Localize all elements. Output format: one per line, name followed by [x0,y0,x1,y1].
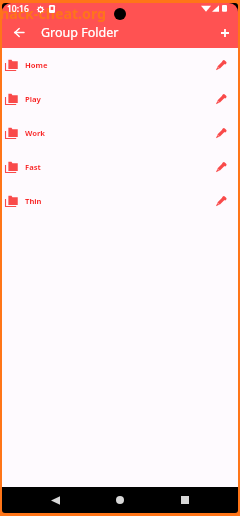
staticText: Fast [25,162,41,172]
button[interactable]: Home [107,487,133,513]
button[interactable]: Edit Work [208,121,232,145]
button[interactable]: Back [2,18,35,47]
staticText: Home [25,60,48,70]
button[interactable]: Edit Fast [208,155,232,179]
button[interactable]: Home [2,48,238,82]
button[interactable]: Recents [172,487,198,513]
button[interactable]: Edit Play [208,87,232,111]
staticText: 10:16 [7,3,29,15]
button[interactable]: Play [2,82,238,116]
staticText: hack-cheat.org [2,4,107,23]
button[interactable]: Edit Home [208,53,232,77]
button[interactable]: Thin [2,184,238,218]
staticText: Group Folder [41,24,119,41]
button[interactable]: Edit Thin [208,189,232,213]
button[interactable]: Work [2,116,238,150]
staticText: Play [25,94,41,104]
button[interactable]: Back [42,487,68,513]
button[interactable]: Fast [2,150,238,184]
staticText: Thin [25,196,42,206]
staticText: Work [25,128,46,138]
button[interactable]: Add [213,18,237,47]
